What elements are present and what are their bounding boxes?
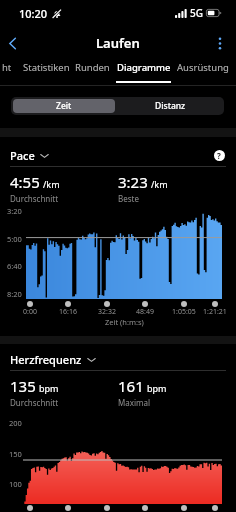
staticText: ? [217,150,221,161]
staticText: Durchschnitt [10,397,59,408]
staticText: Zeit [56,100,72,112]
staticText: Laufen [96,34,140,52]
staticText: /km [43,178,60,190]
button[interactable]: Zeit [13,99,115,113]
staticText: 161 [118,376,144,396]
staticText: 200 [9,418,22,428]
button[interactable]: Distanz [117,97,224,115]
button[interactable]: Diagramme [112,61,175,83]
staticText: Durchschnitt [10,193,59,204]
staticText: Zeit (h:m:s) [105,317,144,327]
staticText: bpm [39,382,59,394]
staticText: 3:20 [7,206,22,216]
staticText: Statistiken [23,61,70,74]
button[interactable]: ht [0,61,17,83]
staticText: Maximal [118,397,151,408]
button[interactable]: Herzfrequenz [10,352,96,367]
staticText: 135 [10,376,36,396]
staticText: 32:32 [98,307,116,317]
staticText: 0:00 [23,307,37,317]
staticText: 16:16 [59,307,77,317]
staticText: 3:23 [118,172,148,192]
staticText: Herzfrequenz [10,352,82,367]
button[interactable]: Statistiken [17,61,75,83]
staticText: 150 [9,449,22,459]
button[interactable]: Runden [71,61,113,83]
staticText: Diagramme [117,61,171,74]
staticText: 48:49 [136,307,154,317]
staticText: 8:20 [7,289,22,299]
staticText: Beste [118,193,139,204]
staticText: bpm [147,382,167,394]
button[interactable]: Back [0,31,24,55]
staticText: 5G [190,6,203,20]
staticText: 1:05:05 [172,307,196,317]
staticText: Distanz [155,100,186,112]
staticText: 1:21:21 [203,307,227,317]
staticText: 10:20 [19,6,48,21]
button[interactable]: Help [211,147,227,163]
staticText: ht [2,61,12,74]
staticText: 100 [9,479,22,489]
staticText: 6:40 [7,261,22,271]
button[interactable]: Pace [10,148,49,163]
staticText: Ausrüstung [177,61,229,74]
staticText: 4:55 [10,172,40,192]
button[interactable]: More options [208,31,232,55]
button[interactable]: Ausrüstung [172,61,234,83]
staticText: /km [151,178,168,190]
staticText: Pace [10,148,35,163]
staticText: 5:00 [7,234,22,244]
staticText: Runden [75,61,110,74]
